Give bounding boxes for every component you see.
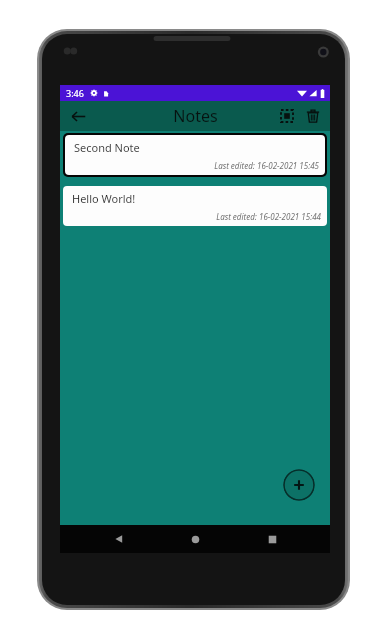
staticText: Last edited: 16-02-2021 15:44 <box>72 211 321 222</box>
staticText: Second Note <box>74 140 140 155</box>
button[interactable]: Back <box>101 525 137 553</box>
button[interactable]: Delete <box>300 103 326 129</box>
button[interactable]: Recents <box>254 525 290 553</box>
button[interactable]: Back <box>65 103 91 129</box>
button[interactable]: Hello World! <box>63 186 327 226</box>
staticText: Last edited: 16-02-2021 15:45 <box>74 160 319 171</box>
staticText: Notes <box>173 105 218 127</box>
button[interactable]: Add note <box>283 469 315 501</box>
staticText: Hello World! <box>72 191 136 206</box>
staticText: 3:46 <box>66 87 84 99</box>
button[interactable]: Home <box>177 525 213 553</box>
button[interactable]: Second Note <box>65 135 325 175</box>
button[interactable]: Select all <box>274 103 300 129</box>
